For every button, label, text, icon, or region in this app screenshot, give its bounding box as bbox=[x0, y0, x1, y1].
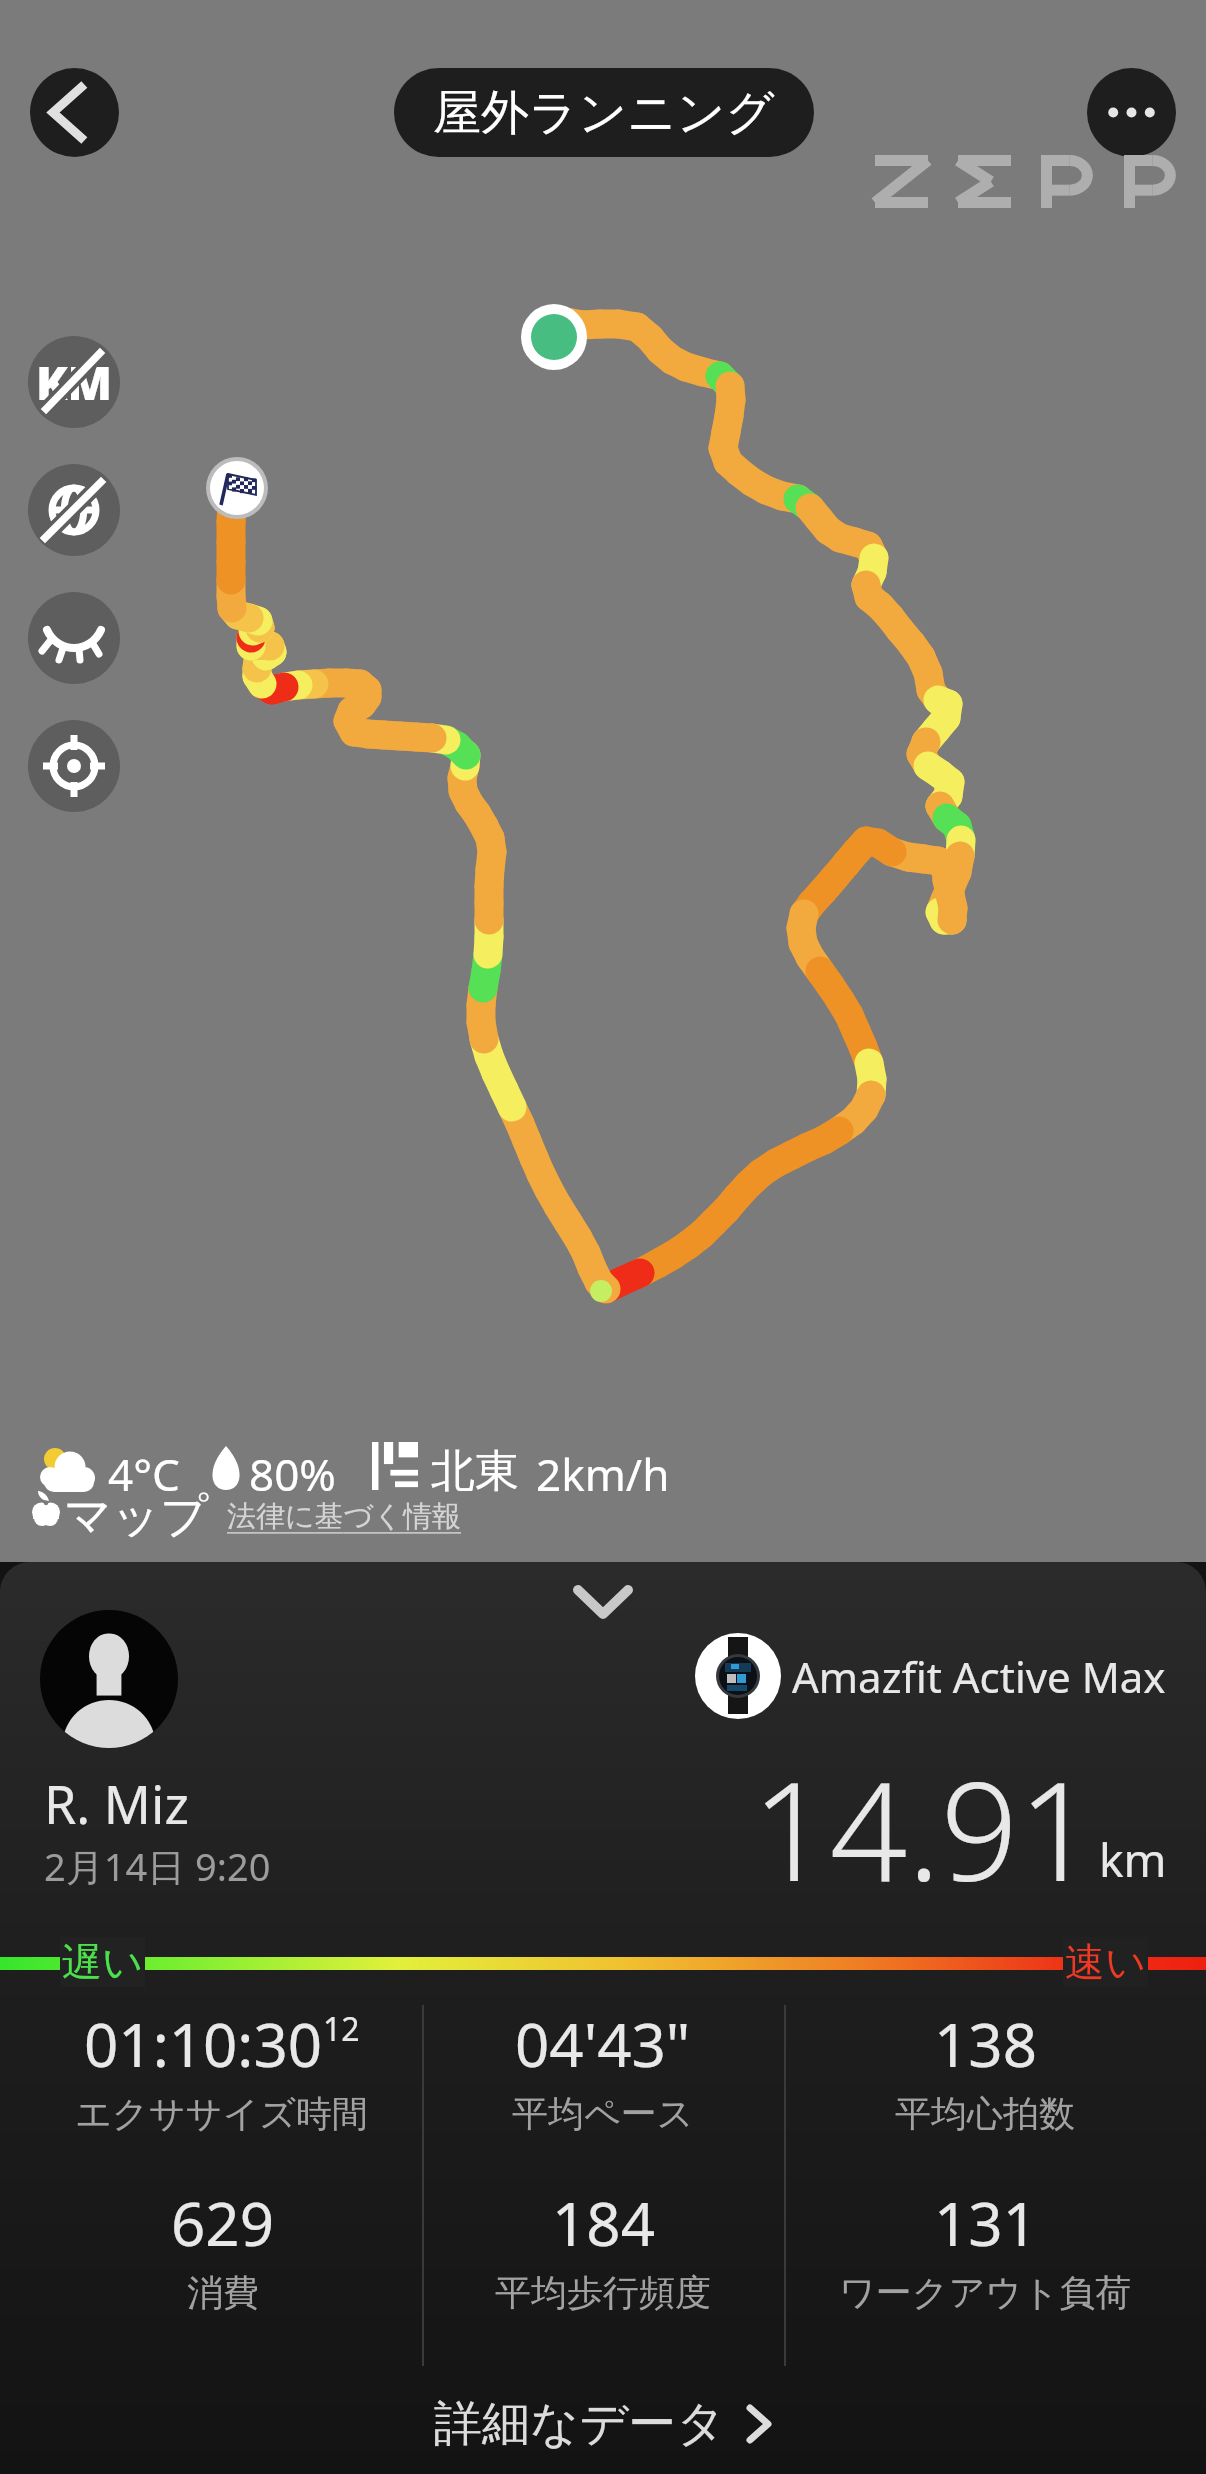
button[interactable]: Collapse details bbox=[561, 1574, 645, 1630]
staticText: R. Miz bbox=[44, 1768, 189, 1839]
button[interactable]: Re-center map bbox=[28, 720, 120, 812]
button[interactable]: Toggle distance unit bbox=[28, 336, 120, 428]
button[interactable]: Amazfit Active Max watch bbox=[695, 1633, 781, 1719]
staticText: 14.91 bbox=[752, 1736, 1096, 1921]
staticText: エクササイズ時間 bbox=[75, 2091, 369, 2136]
staticText: 法律に基づく情報 bbox=[227, 1498, 462, 1535]
staticText: 184 bbox=[552, 2182, 655, 2264]
staticText: 屋外ランニング bbox=[433, 83, 775, 143]
staticText: 2月14日 9:20 bbox=[44, 1840, 271, 1892]
staticText: 平均ペース bbox=[512, 2091, 694, 2136]
staticText: 12 bbox=[323, 2007, 360, 2051]
staticText: 平均歩行頻度 bbox=[495, 2270, 711, 2315]
staticText: 4°C bbox=[108, 1444, 180, 1504]
button[interactable]: Profile photo bbox=[40, 1610, 178, 1748]
button[interactable]: 629 bbox=[32, 2182, 412, 2317]
staticText: マップ bbox=[64, 1487, 209, 1546]
staticText: km bbox=[1099, 1828, 1167, 1891]
staticText: 131 bbox=[934, 2182, 1037, 2264]
button[interactable]: Hide route bbox=[28, 592, 120, 684]
staticText: 01:10:30 bbox=[84, 2003, 323, 2085]
button[interactable]: 04'43" bbox=[413, 2003, 793, 2138]
button[interactable]: Back bbox=[30, 68, 119, 157]
staticText: 629 bbox=[171, 2182, 274, 2264]
button[interactable]: More options bbox=[1087, 68, 1176, 157]
button[interactable]: 131 bbox=[795, 2182, 1175, 2317]
staticText: 北東 bbox=[431, 1444, 519, 1499]
staticText: 80% bbox=[249, 1444, 336, 1504]
staticText: 遅い bbox=[62, 1937, 143, 1987]
staticText: 平均心拍数 bbox=[895, 2091, 1075, 2136]
button[interactable]: Hide globe overlay bbox=[28, 464, 120, 556]
button[interactable]: 詳細なデータ bbox=[0, 2380, 1206, 2468]
staticText: 消費 bbox=[187, 2270, 259, 2315]
button[interactable]: 01:10:30 bbox=[32, 2003, 412, 2138]
staticText: 速い bbox=[1065, 1937, 1146, 1987]
staticText: Amazfit Active Max bbox=[792, 1648, 1166, 1705]
staticText: 2km/h bbox=[536, 1444, 670, 1504]
button[interactable]: 138 bbox=[795, 2003, 1175, 2138]
button[interactable]: 屋外ランニング bbox=[394, 68, 814, 157]
staticText: 138 bbox=[934, 2003, 1037, 2085]
button[interactable]: 184 bbox=[413, 2182, 793, 2317]
button[interactable]: 法律に基づく情報 bbox=[227, 1498, 462, 1535]
staticText: 詳細なデータ bbox=[434, 2394, 726, 2454]
staticText: 04'43" bbox=[515, 2003, 691, 2085]
staticText: ワークアウト負荷 bbox=[839, 2270, 1132, 2315]
staticText: KM bbox=[36, 351, 113, 414]
